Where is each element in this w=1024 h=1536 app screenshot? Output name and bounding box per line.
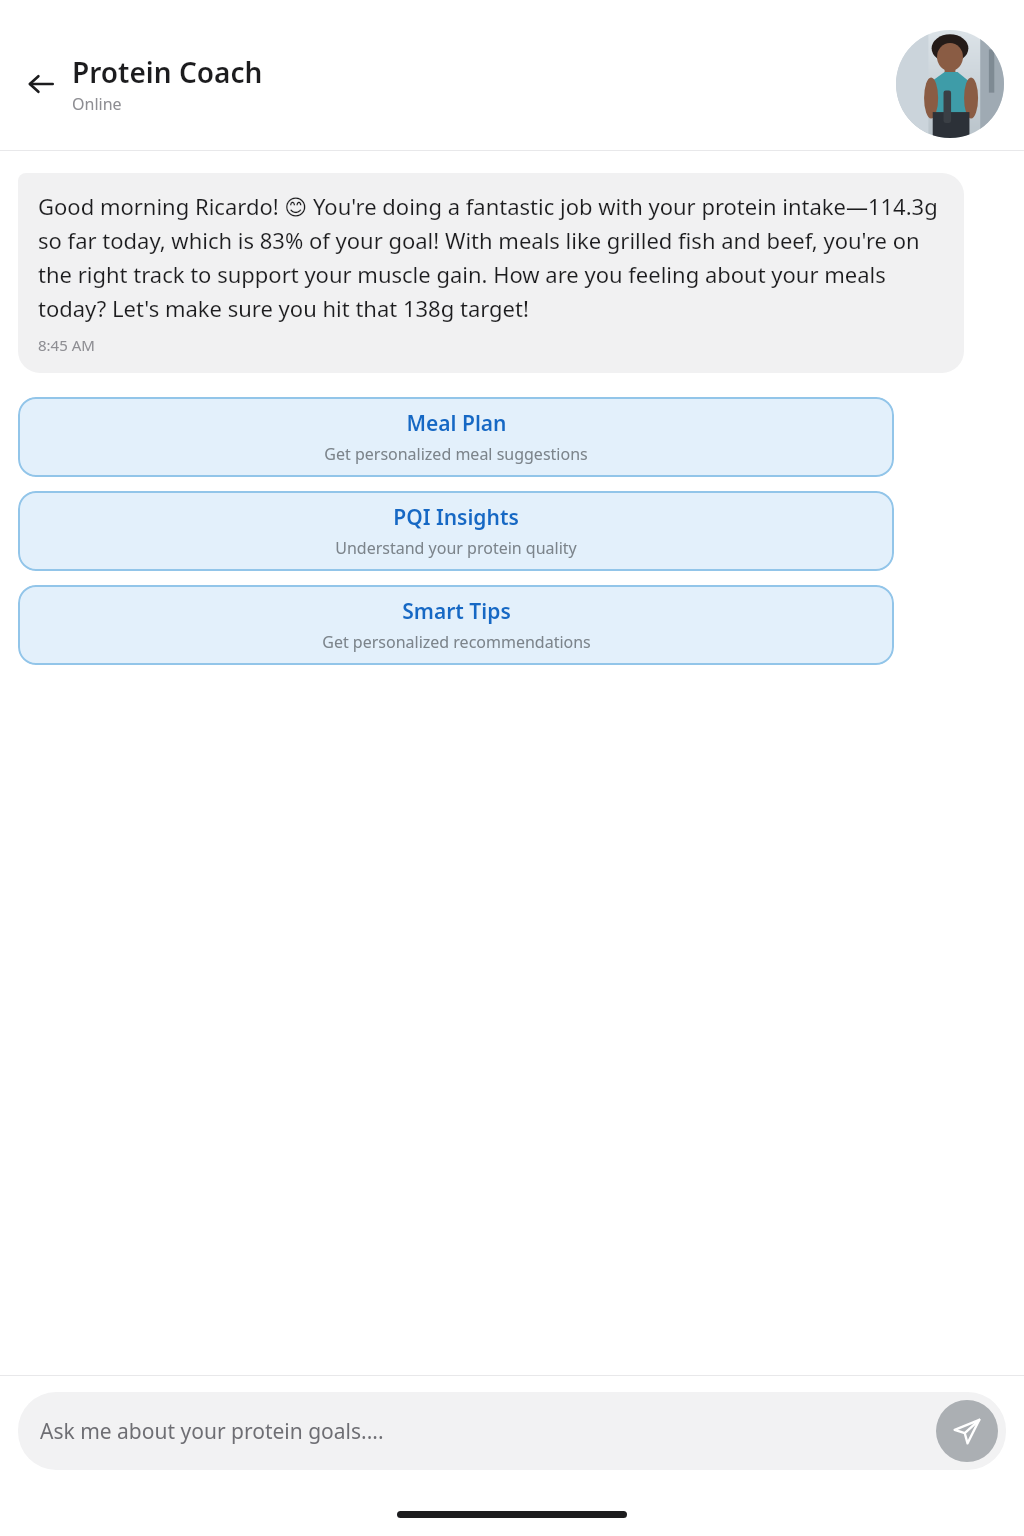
staticText: Online [72,93,122,115]
staticText: Get personalized recommendations [322,631,591,653]
button[interactable]: Coach profile photo [896,30,1004,138]
staticText: Smart Tips [402,597,511,626]
button[interactable]: PQI Insights [18,491,894,571]
staticText: Ask me about your protein goals.... [40,1417,936,1446]
staticText: Meal Plan [406,409,507,438]
staticText: Good morning Ricardo! 😊 You're doing a f… [38,191,944,323]
button[interactable]: Ask me about your protein goals.... [18,1392,1006,1470]
staticText: Protein Coach [72,53,263,91]
button[interactable]: Meal Plan [18,397,894,477]
staticText: PQI Insights [393,503,519,532]
button[interactable]: Back [18,61,64,107]
staticText: 8:45 AM [38,335,95,355]
staticText: Understand your protein quality [335,537,577,559]
staticText: Get personalized meal suggestions [324,443,588,465]
button[interactable]: Good morning Ricardo! 😊 You're doing a f… [18,173,964,373]
button[interactable]: Smart Tips [18,585,894,665]
button[interactable]: Send [936,1400,998,1462]
